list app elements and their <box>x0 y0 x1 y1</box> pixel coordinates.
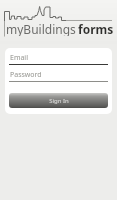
staticText: Sign In <box>49 97 69 105</box>
other: myBuildings forms logo <box>0 0 117 44</box>
button[interactable]: Email <box>9 52 108 66</box>
staticText: myBuildings <box>6 21 76 36</box>
button[interactable]: Password <box>9 69 108 83</box>
staticText: forms <box>78 21 114 36</box>
staticText: Password <box>10 70 42 80</box>
button[interactable]: Sign In <box>9 93 108 108</box>
staticText: Email <box>10 53 28 63</box>
